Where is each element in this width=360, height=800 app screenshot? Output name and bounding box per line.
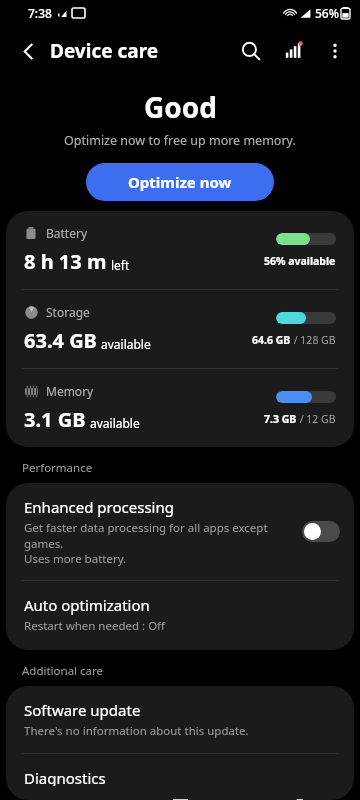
button[interactable]: Battery [6, 211, 354, 289]
staticText: Restart when needed : Off [24, 618, 166, 634]
staticText: 56% [315, 5, 339, 21]
button[interactable]: Software update [6, 686, 354, 753]
staticText: 3.1 GB [24, 406, 86, 433]
button[interactable]: Enhanced processing toggle [302, 521, 340, 542]
staticText: Storage [46, 304, 90, 320]
staticText: Get faster data processing for all apps … [24, 520, 294, 566]
button[interactable]: Search [230, 30, 272, 72]
staticText: Battery [46, 225, 88, 241]
staticText: Memory [46, 383, 94, 399]
staticText: 64.6 GB [252, 333, 291, 347]
staticText: / 12 GB [297, 412, 336, 426]
staticText: 56% available [264, 254, 336, 268]
staticText: 7:38 [28, 5, 52, 21]
button[interactable]: Diagnostics [6, 754, 354, 800]
button[interactable]: Usage statistics [272, 30, 314, 72]
button[interactable]: Memory [6, 369, 354, 447]
staticText: Optimize now [128, 172, 232, 192]
staticText: Auto optimization [24, 595, 150, 615]
staticText: Performance [22, 460, 93, 476]
staticText: Enhanced processing [24, 497, 174, 517]
staticText: Optimize now to free up more memory. [64, 132, 296, 149]
staticText: / 128 GB [291, 333, 336, 347]
staticText: Additional care [22, 663, 104, 679]
staticText: 63.4 GB [24, 327, 97, 354]
staticText: Device care [50, 38, 159, 64]
button[interactable]: Enhanced processing [6, 483, 354, 580]
staticText: There's no information about this update… [24, 723, 249, 739]
button[interactable]: Optimize now [86, 163, 274, 201]
button[interactable]: More options [314, 30, 356, 72]
staticText: available [90, 415, 140, 431]
staticText: 7.3 GB [264, 412, 297, 426]
button[interactable]: Auto optimization [6, 581, 354, 650]
staticText: 8 h 13 m [24, 248, 107, 275]
staticText: left [111, 257, 130, 273]
button[interactable]: Storage [6, 290, 354, 368]
staticText: Software update [24, 700, 141, 720]
staticText: Good [144, 88, 217, 126]
staticText: Diagnostics [24, 768, 106, 786]
staticText: available [101, 336, 151, 352]
button[interactable]: Back [8, 31, 48, 71]
